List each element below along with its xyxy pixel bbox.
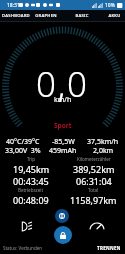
button[interactable]: BASIC xyxy=(71,10,93,22)
staticText: 459mAh xyxy=(49,146,77,156)
staticText: 0,0 xyxy=(36,60,89,108)
button[interactable]: Lock xyxy=(54,226,72,244)
staticText: Total xyxy=(88,187,99,193)
button[interactable]: AKKU xyxy=(104,10,124,22)
staticText: km/h xyxy=(54,95,72,105)
button[interactable]: TRENNEN xyxy=(96,244,122,252)
staticText: 10% xyxy=(105,2,115,9)
staticText: 19,45km xyxy=(13,163,50,175)
staticText: DASHBOARD xyxy=(2,13,30,19)
staticText: Betriebszeit xyxy=(18,187,44,193)
staticText: -85,5W xyxy=(52,137,75,147)
staticText: Kilometerzähler xyxy=(77,156,111,162)
staticText: Sport xyxy=(54,121,72,130)
staticText: 00:48:09 xyxy=(13,194,49,206)
staticText: 389,52km xyxy=(73,163,115,175)
staticText: Trip xyxy=(27,156,36,162)
button[interactable]: GRAPHEN xyxy=(33,10,59,22)
staticText: 2,0km xyxy=(93,146,114,156)
staticText: GRAPHEN xyxy=(35,13,57,19)
staticText: TRENNEN xyxy=(97,245,121,251)
staticText: 33,00V 3% xyxy=(5,146,41,156)
staticText: 06:31:04 xyxy=(76,175,112,187)
button[interactable]: DASHBOARD xyxy=(2,10,30,22)
staticText: 37,5km/h xyxy=(87,137,119,147)
button[interactable]: Speedometer xyxy=(87,219,107,235)
button[interactable]: Drive mode xyxy=(55,209,69,223)
button[interactable]: Headlight xyxy=(15,218,35,234)
staticText: 00:43:45 xyxy=(13,175,49,187)
staticText: 18:31 xyxy=(7,2,20,9)
staticText: Status: Verbunden xyxy=(3,245,42,251)
staticText: 40°C/39°C xyxy=(6,137,40,147)
staticText: BASIC xyxy=(75,13,89,19)
staticText: AKKU xyxy=(108,13,121,19)
staticText: 1158,97km xyxy=(70,194,117,206)
